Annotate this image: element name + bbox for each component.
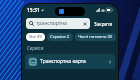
staticText: Транспортна карта (40, 58, 108, 65)
button[interactable]: Clear search (82, 21, 87, 26)
button[interactable]: Транспортна карта (25, 54, 115, 69)
button[interactable]: транспортна (26, 18, 90, 29)
button[interactable]: Часті питання 35 (75, 33, 116, 41)
button[interactable]: Усе 39 (26, 33, 45, 41)
staticText: Сервіси (27, 45, 44, 51)
staticText: Усе 39 (29, 34, 42, 40)
staticText: Сервіси 2 (50, 34, 70, 40)
staticText: Часті питання 35 (78, 34, 113, 40)
staticText: Закрити (94, 21, 113, 27)
button[interactable]: Сервіси 2 (47, 33, 73, 41)
button[interactable]: Закрити (93, 19, 114, 29)
staticText: 15:31 (27, 7, 40, 14)
staticText: транспортна (36, 20, 82, 27)
